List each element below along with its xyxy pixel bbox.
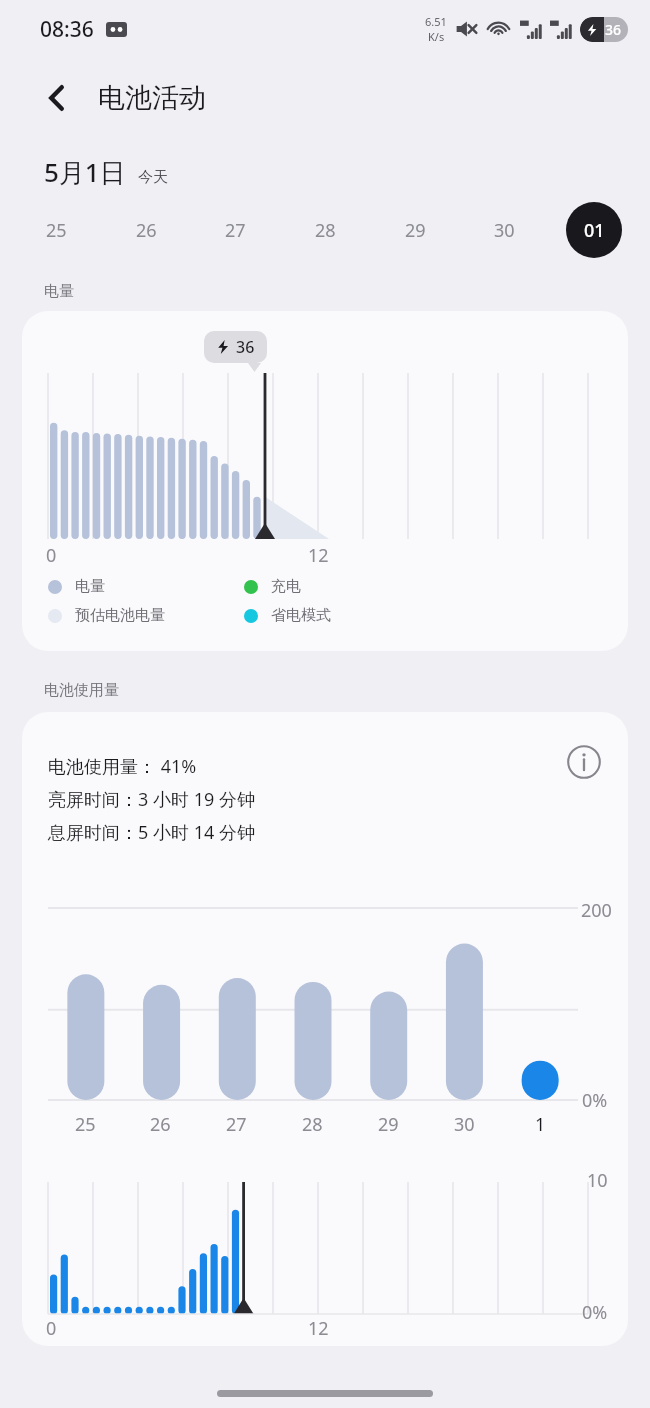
staticText: 30 bbox=[454, 1112, 475, 1137]
staticText: 5月1日 bbox=[44, 154, 126, 190]
button[interactable]: Info bbox=[562, 740, 606, 784]
staticText: 0% bbox=[582, 1300, 608, 1325]
staticText: 10 bbox=[587, 1168, 608, 1193]
staticText: 6.51 bbox=[425, 14, 447, 29]
staticText: 充电 bbox=[271, 577, 301, 596]
staticText: 0 bbox=[46, 543, 57, 568]
staticText: 28 bbox=[315, 218, 336, 243]
staticText: 30 bbox=[494, 218, 515, 243]
staticText: 27 bbox=[226, 1112, 247, 1137]
staticText: 1 bbox=[535, 1112, 546, 1137]
staticText: 36 bbox=[605, 20, 622, 39]
staticText: 省电模式 bbox=[271, 606, 331, 625]
staticText: 电池使用量： 41% bbox=[48, 754, 197, 779]
button[interactable]: 27 bbox=[207, 202, 263, 258]
staticText: 电池使用量 bbox=[44, 681, 119, 700]
staticText: 今天 bbox=[138, 168, 168, 187]
staticText: 27 bbox=[225, 218, 246, 243]
staticText: 0 bbox=[46, 1316, 57, 1341]
staticText: 电量 bbox=[44, 282, 74, 301]
staticText: 预估电池电量 bbox=[75, 606, 165, 625]
staticText: 0% bbox=[582, 1088, 608, 1113]
button[interactable]: Back bbox=[32, 73, 82, 123]
button[interactable]: 01 bbox=[566, 202, 622, 258]
staticText: 25 bbox=[75, 1112, 96, 1137]
staticText: 25 bbox=[46, 218, 67, 243]
staticText: 200 bbox=[581, 898, 612, 923]
button[interactable]: 36 bbox=[22, 311, 628, 651]
button[interactable]: 28 bbox=[297, 202, 353, 258]
staticText: 电池活动 bbox=[98, 81, 206, 115]
staticText: 26 bbox=[150, 1112, 171, 1137]
staticText: 息屏时间：5 小时 14 分钟 bbox=[48, 820, 255, 845]
staticText: 亮屏时间：3 小时 19 分钟 bbox=[48, 787, 255, 812]
staticText: 电量 bbox=[75, 577, 105, 596]
button[interactable]: 29 bbox=[387, 202, 443, 258]
staticText: K/s bbox=[428, 29, 445, 44]
staticText: 12 bbox=[308, 543, 329, 568]
staticText: 36 bbox=[236, 336, 255, 358]
staticText: 08:36 bbox=[40, 15, 94, 44]
staticText: 12 bbox=[308, 1316, 329, 1341]
button[interactable]: 30 bbox=[476, 202, 532, 258]
staticText: 29 bbox=[405, 218, 426, 243]
button[interactable]: 26 bbox=[118, 202, 174, 258]
staticText: 28 bbox=[302, 1112, 323, 1137]
staticText: 26 bbox=[136, 218, 157, 243]
button[interactable]: 25 bbox=[28, 202, 84, 258]
staticText: 01 bbox=[584, 218, 605, 243]
staticText: 29 bbox=[378, 1112, 399, 1137]
